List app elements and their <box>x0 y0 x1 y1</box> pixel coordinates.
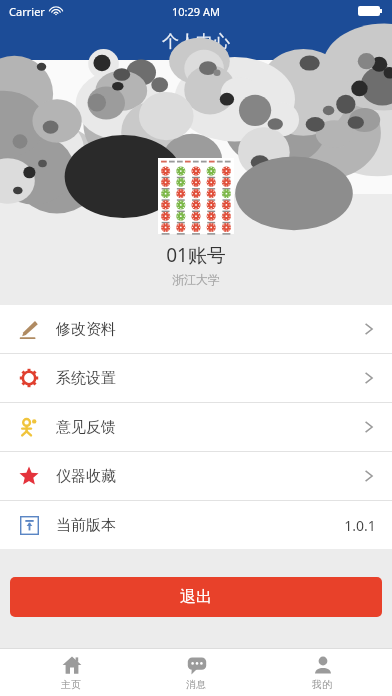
staticText: 我的 <box>312 678 332 691</box>
staticText: 意见反馈 <box>56 418 116 437</box>
button[interactable]: Favorites <box>0 452 392 500</box>
staticText: 1.0.1 <box>344 516 376 535</box>
button[interactable]: 我的 <box>267 649 377 696</box>
staticText: 01账号 <box>166 242 226 268</box>
staticText: 当前版本 <box>56 516 116 535</box>
staticText: 个人中心 <box>162 31 230 52</box>
button[interactable]: Edit profile <box>0 305 392 353</box>
other: Favorites <box>19 466 39 486</box>
button[interactable]: 消息 <box>141 649 251 696</box>
other: Edit profile <box>19 319 39 339</box>
staticText: 浙江大学 <box>172 272 220 287</box>
staticText: 主页 <box>61 678 81 691</box>
staticText: 退出 <box>180 587 212 607</box>
staticText: 系统设置 <box>56 369 116 388</box>
button[interactable]: Feedback <box>0 403 392 451</box>
button[interactable]: 退出 <box>10 577 382 617</box>
staticText: Carrier <box>9 4 45 19</box>
staticText: 修改资料 <box>56 320 116 339</box>
other: Feedback <box>19 417 39 437</box>
other: System settings <box>19 368 39 388</box>
staticText: 仪器收藏 <box>56 467 116 486</box>
button[interactable]: Current version <box>0 501 392 549</box>
staticText: 消息 <box>186 678 206 691</box>
staticText: 10:29 AM <box>172 4 220 19</box>
other: Current version <box>20 516 39 535</box>
button[interactable]: 主页 <box>16 649 126 696</box>
button[interactable]: System settings <box>0 354 392 402</box>
